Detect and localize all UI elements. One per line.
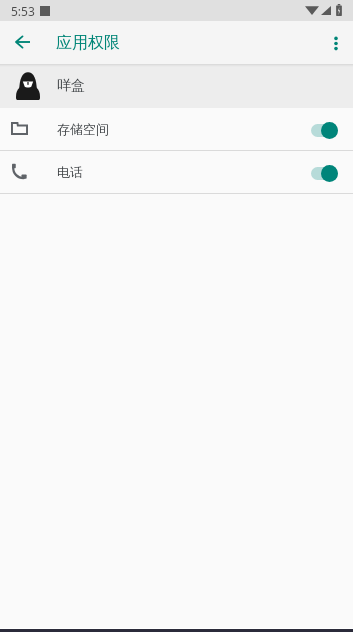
button[interactable] xyxy=(311,119,338,141)
staticText: 电话 xyxy=(57,164,83,180)
staticText: 存储空间 xyxy=(57,121,109,137)
button[interactable]: 存储空间 xyxy=(0,108,353,150)
staticText: 应用权限 xyxy=(56,33,120,53)
button[interactable]: 电话 xyxy=(0,151,353,193)
staticText: 5:53 xyxy=(11,3,35,19)
staticText: 咩盒 xyxy=(57,77,85,95)
button[interactable]: Back xyxy=(2,23,42,63)
button[interactable] xyxy=(311,162,338,184)
button[interactable]: More options xyxy=(319,23,353,63)
button[interactable]: 咩盒 xyxy=(0,67,353,108)
